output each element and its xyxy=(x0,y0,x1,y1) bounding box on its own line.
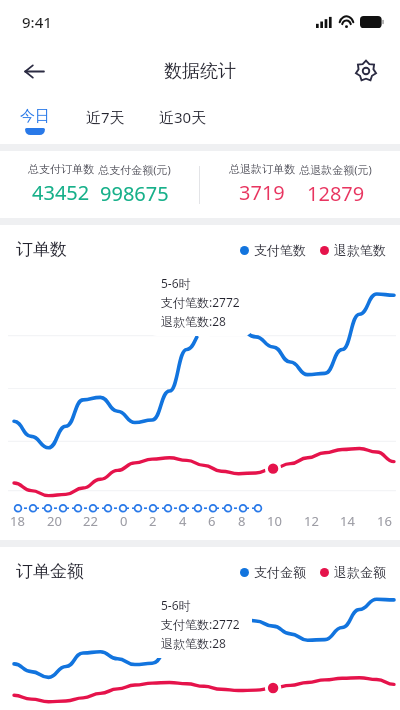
staticText: 5-6时 xyxy=(161,597,191,613)
staticText: 10 xyxy=(267,512,282,530)
button[interactable]: 近7天 xyxy=(84,105,127,138)
staticText: 4 xyxy=(179,512,187,530)
staticText: 16 xyxy=(377,512,392,530)
staticText: 14 xyxy=(340,512,355,530)
staticText: 退款笔数:28 xyxy=(161,635,226,651)
button[interactable]: Settings xyxy=(344,49,388,93)
button[interactable]: 退款金额 xyxy=(320,564,386,580)
staticText: 退款笔数 xyxy=(334,242,386,258)
staticText: 12 xyxy=(304,512,319,530)
staticText: 总退款金额(元) xyxy=(299,162,372,177)
staticText: 退款笔数:28 xyxy=(161,313,226,329)
staticText: 今日 xyxy=(20,107,50,126)
staticText: 支付笔数 xyxy=(254,242,306,258)
staticText: 22 xyxy=(83,512,98,530)
staticText: 退款金额 xyxy=(334,564,386,580)
staticText: 总支付订单数 xyxy=(28,162,94,176)
staticText: 订单数 xyxy=(16,239,67,260)
button[interactable]: 近30天 xyxy=(157,105,209,138)
staticText: 20 xyxy=(47,512,62,530)
button[interactable]: 支付笔数 xyxy=(240,242,306,258)
button[interactable]: 退款笔数 xyxy=(320,242,386,258)
staticText: 2 xyxy=(149,512,157,530)
staticText: 订单金额 xyxy=(16,561,84,582)
staticText: 支付金额 xyxy=(254,564,306,580)
staticText: 0 xyxy=(120,512,128,530)
button[interactable]: 支付金额 xyxy=(240,564,306,580)
staticText: 5-6时 xyxy=(161,275,191,291)
staticText: 9:41 xyxy=(22,12,52,32)
staticText: 43452 xyxy=(32,179,90,206)
staticText: 数据统计 xyxy=(164,60,236,83)
staticText: 近7天 xyxy=(86,107,125,127)
staticText: 近30天 xyxy=(159,107,207,127)
staticText: 支付笔数:2772 xyxy=(161,294,240,310)
staticText: 支付笔数:2772 xyxy=(161,616,240,632)
staticText: 18 xyxy=(10,512,25,530)
button[interactable]: Back xyxy=(12,49,56,93)
staticText: 998675 xyxy=(100,180,169,207)
staticText: 12879 xyxy=(307,180,365,207)
staticText: 6 xyxy=(208,512,216,530)
staticText: 3719 xyxy=(239,179,285,206)
staticText: 总退款订单数 xyxy=(229,162,295,176)
staticText: 总支付金额(元) xyxy=(98,162,171,177)
staticText: 8 xyxy=(238,512,246,530)
button[interactable]: 今日 xyxy=(18,105,52,137)
